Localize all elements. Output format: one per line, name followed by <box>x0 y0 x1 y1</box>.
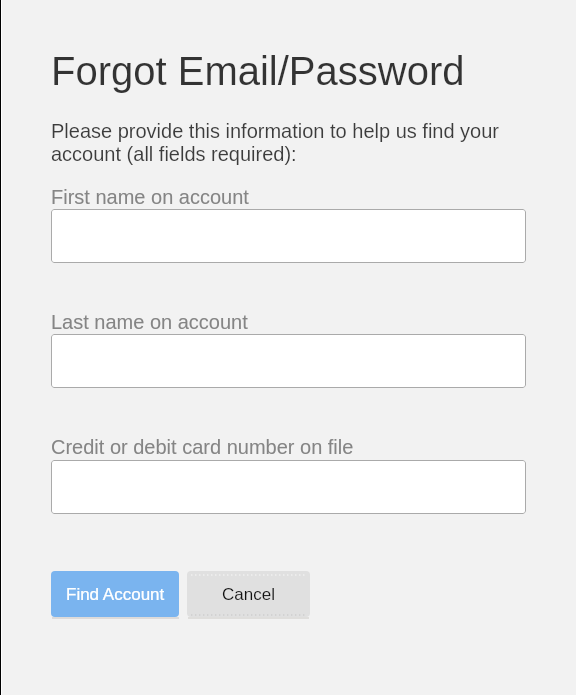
staticText: Find Account <box>66 585 165 604</box>
staticText: Credit or debit card number on file <box>51 436 354 458</box>
staticText: First name on account <box>51 186 249 208</box>
button[interactable]: First name on account <box>51 209 526 263</box>
button[interactable]: Credit or debit card number on file <box>51 460 526 514</box>
staticText: Please provide this information to help … <box>51 120 500 166</box>
staticText: Cancel <box>222 585 275 604</box>
staticText: Last name on account <box>51 311 248 333</box>
button[interactable]: Cancel <box>187 571 310 617</box>
button[interactable]: Find Account <box>51 571 179 617</box>
staticText: Forgot Email/Password <box>51 49 465 94</box>
button[interactable]: Last name on account <box>51 334 526 388</box>
